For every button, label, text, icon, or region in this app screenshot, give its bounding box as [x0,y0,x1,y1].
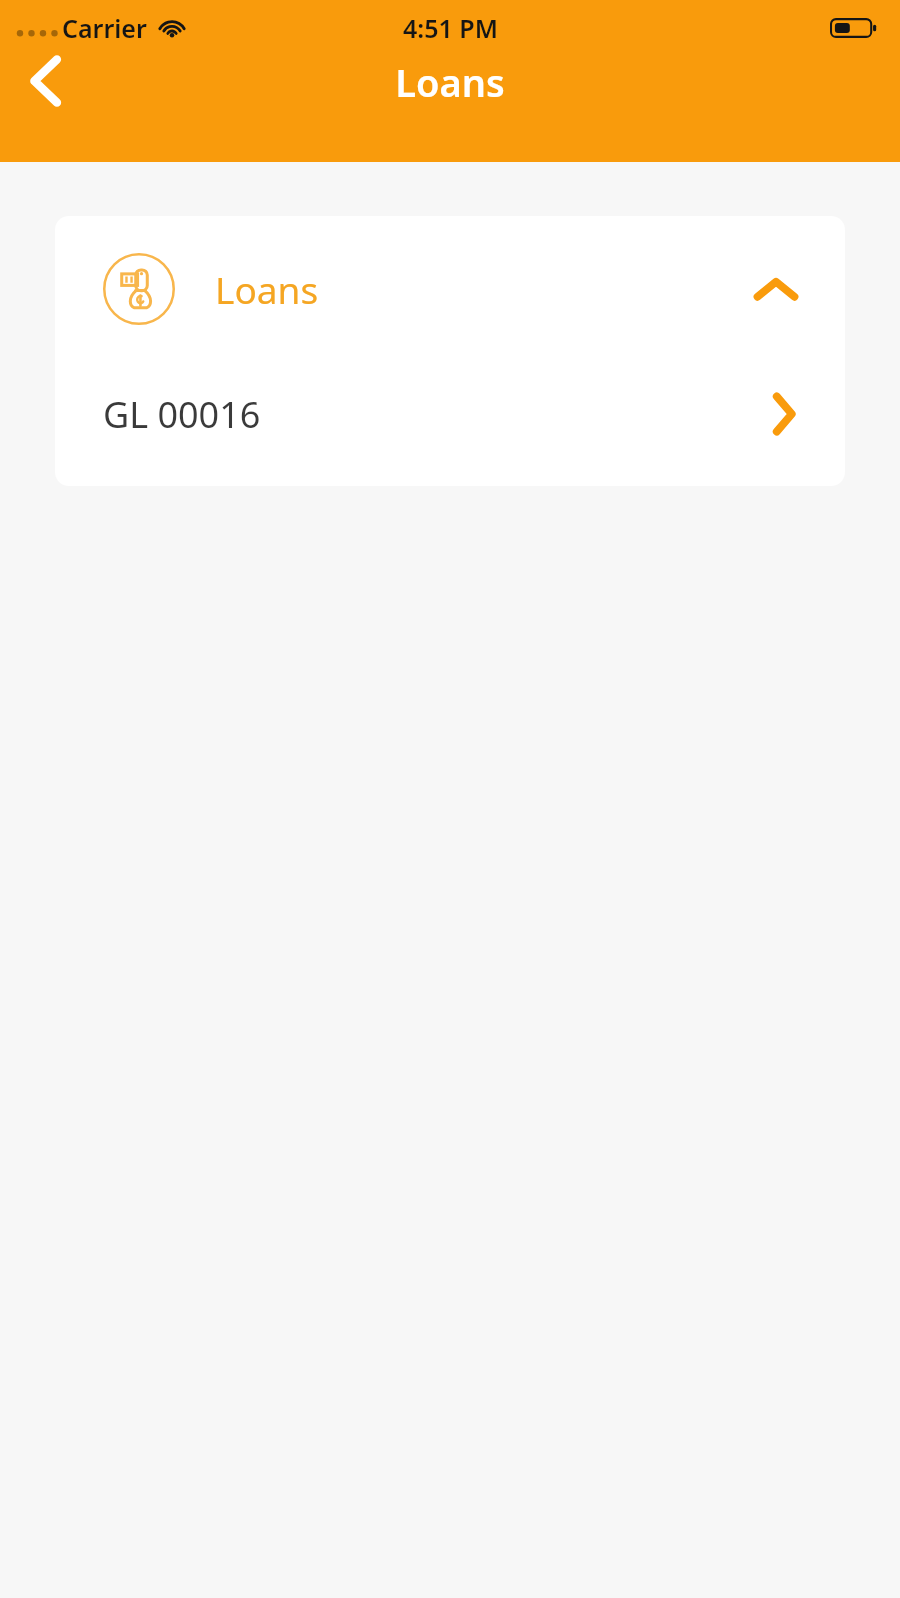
staticText: Carrier [62,11,147,45]
staticText: Loans [395,56,505,106]
staticText: GL 00016 [103,390,261,439]
button[interactable]: Back [0,56,92,106]
button[interactable]: GL 00016 [55,362,845,466]
staticText: 4:51 PM [403,11,498,45]
button[interactable]: Loans [55,216,845,362]
staticText: Loans [215,264,319,314]
